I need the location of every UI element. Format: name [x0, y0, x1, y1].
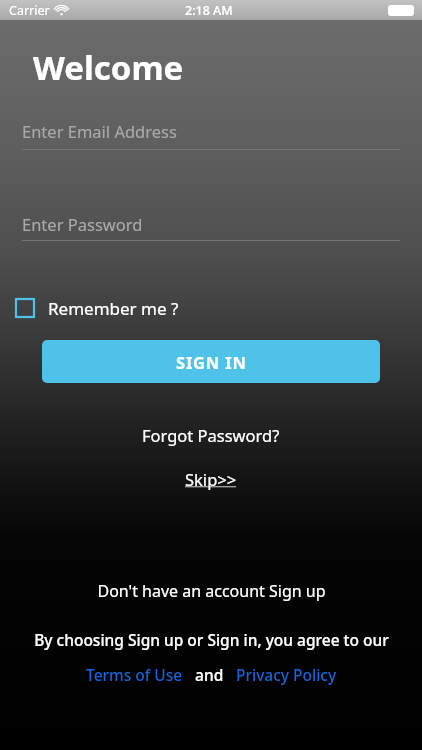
staticText: Enter Password: [22, 213, 143, 235]
staticText: Enter Email Address: [22, 120, 177, 142]
staticText: Remember me ?: [48, 297, 179, 320]
other: Wi-Fi signal: [55, 4, 68, 17]
staticText: SIGN IN: [176, 351, 247, 373]
button[interactable]: Terms of Use: [86, 664, 183, 685]
staticText: Terms of Use: [86, 664, 183, 685]
staticText: Don't have an account Sign up: [97, 580, 326, 602]
button[interactable]: Skip>>: [0, 466, 422, 492]
staticText: and: [183, 664, 236, 685]
staticText: Forgot Password?: [142, 424, 280, 446]
button[interactable]: Enter Email Address: [22, 112, 400, 150]
staticText: Privacy Policy: [236, 664, 337, 685]
other: Battery full: [388, 5, 414, 16]
staticText: By choosing Sign up or Sign in, you agre…: [34, 629, 389, 650]
staticText: Carrier: [9, 2, 50, 19]
staticText: Skip>>: [185, 468, 237, 490]
button[interactable]: Remember me ?: [15, 293, 179, 323]
button[interactable]: Don't have an account Sign up: [0, 578, 422, 604]
staticText: Welcome: [33, 45, 184, 90]
staticText: 2:18 AM: [185, 2, 233, 19]
button[interactable]: Enter Password: [22, 207, 400, 241]
button[interactable]: SIGN IN: [42, 340, 380, 383]
button[interactable]: Privacy Policy: [236, 664, 337, 685]
button[interactable]: Forgot Password?: [0, 421, 422, 449]
